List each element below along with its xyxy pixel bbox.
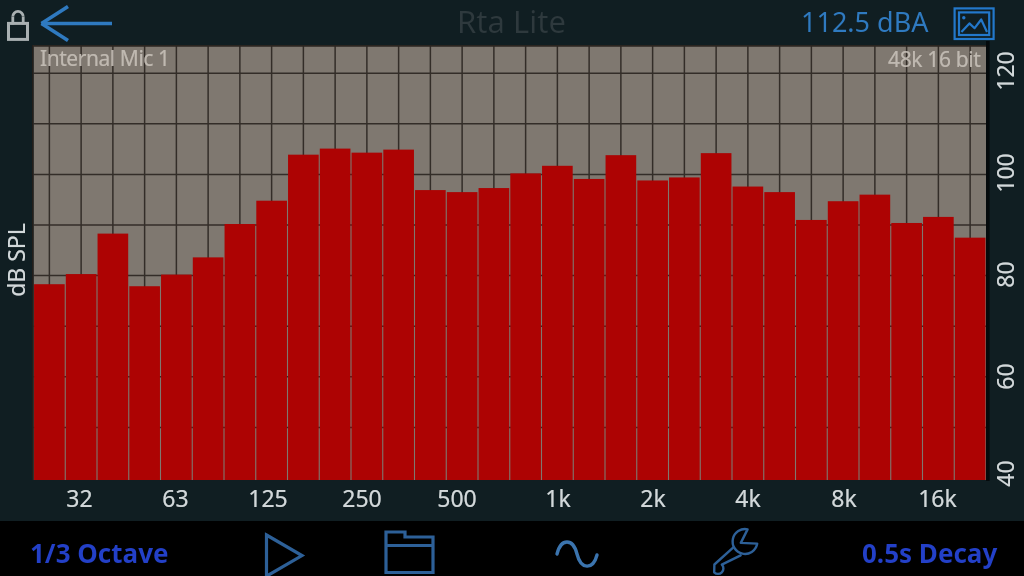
staticText: 40 [989,460,1020,487]
staticText: 500 [437,482,477,513]
staticText: 4k [735,482,761,513]
staticText: dB SPL [0,223,31,297]
staticText: 100 [989,153,1020,193]
button[interactable]: Settings [692,521,782,576]
button[interactable]: Signal generator [532,521,622,576]
staticText: 8k [831,482,857,513]
staticText: 80 [989,261,1020,288]
button[interactable]: Back [38,3,118,45]
staticText: 125 [248,482,288,513]
staticText: 120 [989,51,1020,91]
staticText: 32 [66,482,93,513]
button[interactable]: Open file [365,521,455,576]
staticText: 48k 16 bit [888,45,981,74]
button[interactable]: Save screenshot [950,3,998,43]
staticText: 2k [640,482,666,513]
staticText: 250 [342,482,382,513]
button[interactable]: 1/3 Octave [0,521,198,576]
staticText: 60 [989,363,1020,390]
staticText: Internal Mic 1 [40,44,170,73]
staticText: 0.5s Decay [862,535,998,570]
staticText: 112.5 dBA [801,3,929,40]
button[interactable]: Screen lock [0,5,36,47]
button[interactable]: Play [240,521,330,576]
staticText: 1/3 Octave [30,535,169,570]
staticText: 1k [545,482,571,513]
button[interactable]: 112.5 dBA [790,0,940,42]
staticText: 16k [918,482,957,513]
button[interactable]: 0.5s Decay [840,521,1020,576]
staticText: 63 [162,482,189,513]
staticText: Rta Lite [457,0,566,42]
